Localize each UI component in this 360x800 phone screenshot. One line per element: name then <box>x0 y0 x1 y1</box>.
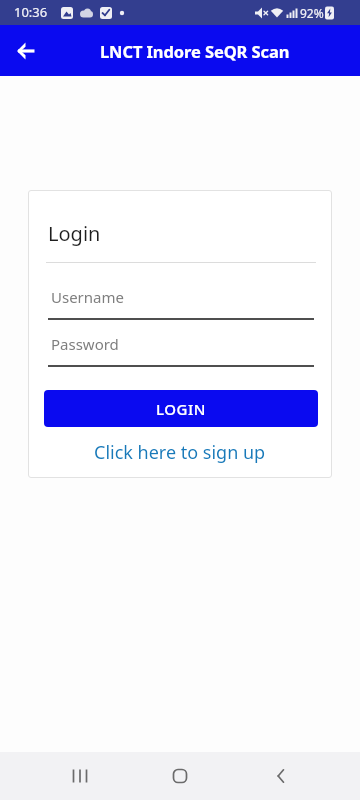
staticText: LNCT Indore SeQR Scan <box>100 40 290 62</box>
staticText: LOGIN <box>156 399 206 419</box>
button[interactable] <box>0 25 51 76</box>
button[interactable]: Password <box>44 325 318 367</box>
button[interactable] <box>257 752 305 800</box>
button[interactable] <box>156 752 204 800</box>
button[interactable]: Click here to sign up <box>28 440 332 464</box>
staticText: 10:36 <box>14 3 48 21</box>
button[interactable]: LOGIN <box>44 390 318 427</box>
button[interactable] <box>56 752 104 800</box>
staticText: Username <box>51 287 124 307</box>
staticText: Login <box>48 220 101 247</box>
staticText: 92% <box>300 5 324 21</box>
staticText: Password <box>51 334 119 354</box>
button[interactable]: Username <box>44 278 318 320</box>
staticText: Click here to sign up <box>94 440 266 464</box>
